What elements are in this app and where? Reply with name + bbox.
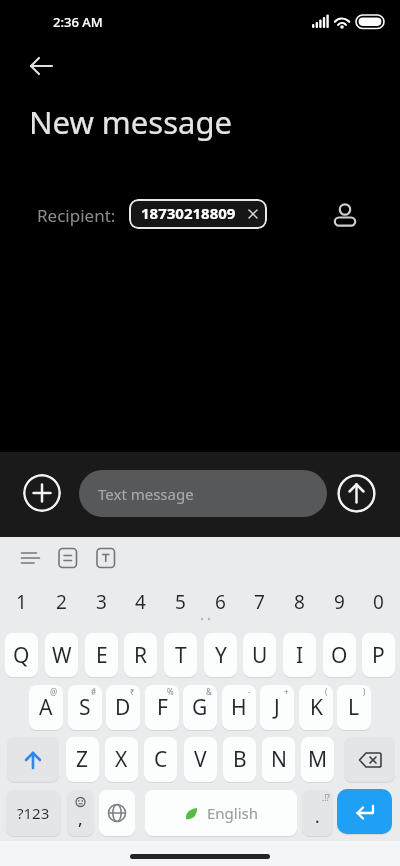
button[interactable]: Q bbox=[5, 633, 38, 677]
staticText: N bbox=[271, 745, 287, 774]
button[interactable]: Z bbox=[66, 737, 99, 782]
button[interactable]: Text message bbox=[79, 470, 327, 517]
button[interactable]: E bbox=[85, 633, 118, 677]
button[interactable]: X bbox=[105, 737, 138, 782]
staticText: ( bbox=[325, 686, 328, 697]
staticText: 4 bbox=[135, 589, 146, 615]
button[interactable]: G bbox=[183, 685, 217, 730]
button[interactable]: I bbox=[283, 633, 316, 677]
button[interactable]: V bbox=[184, 737, 217, 782]
staticText: W bbox=[52, 641, 72, 670]
staticText: Q bbox=[13, 641, 30, 670]
staticText: K bbox=[310, 693, 323, 722]
staticText: M bbox=[308, 745, 328, 774]
staticText: - bbox=[248, 686, 251, 697]
button[interactable]: 7 bbox=[241, 585, 277, 619]
button[interactable] bbox=[23, 474, 61, 512]
button[interactable]: B bbox=[223, 737, 256, 782]
button[interactable]: D bbox=[106, 685, 140, 730]
button[interactable]: M bbox=[301, 737, 334, 782]
staticText: J bbox=[274, 693, 280, 722]
button[interactable]: T bbox=[164, 633, 197, 677]
staticText: .!? bbox=[322, 792, 330, 803]
staticText: 6 bbox=[215, 589, 226, 615]
button[interactable]: ?123 bbox=[6, 790, 61, 836]
staticText: ) bbox=[363, 686, 366, 697]
button[interactable] bbox=[22, 56, 60, 78]
staticText: G bbox=[192, 693, 208, 722]
staticText: A bbox=[39, 693, 53, 722]
staticText: + bbox=[284, 686, 289, 697]
staticText: V bbox=[194, 745, 207, 774]
button[interactable] bbox=[337, 474, 376, 513]
button[interactable]: 18730218809 bbox=[129, 199, 267, 229]
button[interactable]: N bbox=[262, 737, 295, 782]
staticText: & bbox=[206, 686, 212, 697]
button[interactable]: 8 bbox=[281, 585, 317, 619]
staticText: 1 bbox=[16, 589, 27, 615]
staticText: U bbox=[252, 641, 268, 670]
staticText: 9 bbox=[334, 589, 345, 615]
staticText: Recipient: bbox=[37, 204, 116, 227]
button[interactable]: English bbox=[145, 790, 297, 836]
button[interactable]: 2 bbox=[43, 585, 79, 619]
staticText: @ bbox=[50, 686, 58, 697]
staticText: Text message bbox=[98, 484, 194, 504]
button[interactable]: W bbox=[45, 633, 78, 677]
staticText: 5 bbox=[175, 589, 186, 615]
button[interactable]: , bbox=[67, 790, 94, 836]
button[interactable] bbox=[99, 790, 135, 836]
staticText: O bbox=[331, 641, 348, 670]
staticText: 2:36 AM bbox=[53, 13, 103, 31]
staticText: P bbox=[372, 641, 385, 670]
staticText: New message bbox=[29, 101, 232, 143]
button[interactable]: S bbox=[68, 685, 102, 730]
staticText: I bbox=[296, 641, 304, 670]
button[interactable]: H bbox=[222, 685, 256, 730]
button[interactable]: . bbox=[302, 790, 333, 836]
button[interactable] bbox=[331, 201, 359, 229]
button[interactable]: A bbox=[29, 685, 63, 730]
button[interactable]: P bbox=[362, 633, 395, 677]
button[interactable]: F bbox=[145, 685, 179, 730]
staticText: T bbox=[175, 641, 187, 670]
button[interactable]: 4 bbox=[122, 585, 158, 619]
button[interactable]: 9 bbox=[321, 585, 357, 619]
button[interactable]: R bbox=[124, 633, 157, 677]
staticText: . bbox=[315, 805, 320, 828]
staticText: 0 bbox=[373, 589, 384, 615]
button[interactable]: 3 bbox=[83, 585, 119, 619]
button[interactable]: 5 bbox=[162, 585, 198, 619]
staticText: ₹ bbox=[130, 686, 135, 697]
staticText: C bbox=[154, 745, 168, 774]
button[interactable] bbox=[7, 737, 59, 782]
staticText: Z bbox=[76, 745, 89, 774]
button[interactable]: 1 bbox=[3, 585, 39, 619]
button[interactable] bbox=[337, 789, 392, 834]
button[interactable]: J bbox=[260, 685, 294, 730]
button[interactable]: L bbox=[337, 685, 371, 730]
button[interactable]: U bbox=[243, 633, 276, 677]
button[interactable]: Y bbox=[204, 633, 237, 677]
staticText: D bbox=[115, 693, 131, 722]
staticText: S bbox=[79, 693, 91, 722]
staticText: H bbox=[231, 693, 247, 722]
staticText: E bbox=[96, 641, 108, 670]
button[interactable]: 0 bbox=[360, 585, 396, 619]
staticText: ?123 bbox=[17, 803, 50, 823]
staticText: Y bbox=[215, 641, 227, 670]
staticText: English bbox=[207, 803, 259, 823]
staticText: X bbox=[115, 745, 128, 774]
staticText: 7 bbox=[254, 589, 265, 615]
button[interactable]: 6 bbox=[202, 585, 238, 619]
button[interactable]: C bbox=[144, 737, 177, 782]
staticText: F bbox=[157, 693, 168, 722]
staticText: L bbox=[348, 693, 360, 722]
button[interactable] bbox=[344, 737, 395, 782]
button[interactable]: K bbox=[299, 685, 333, 730]
staticText: B bbox=[233, 745, 247, 774]
staticText: 3 bbox=[96, 589, 107, 615]
staticText: 18730218809 bbox=[141, 203, 236, 223]
button[interactable]: O bbox=[323, 633, 356, 677]
staticText: R bbox=[134, 641, 148, 670]
